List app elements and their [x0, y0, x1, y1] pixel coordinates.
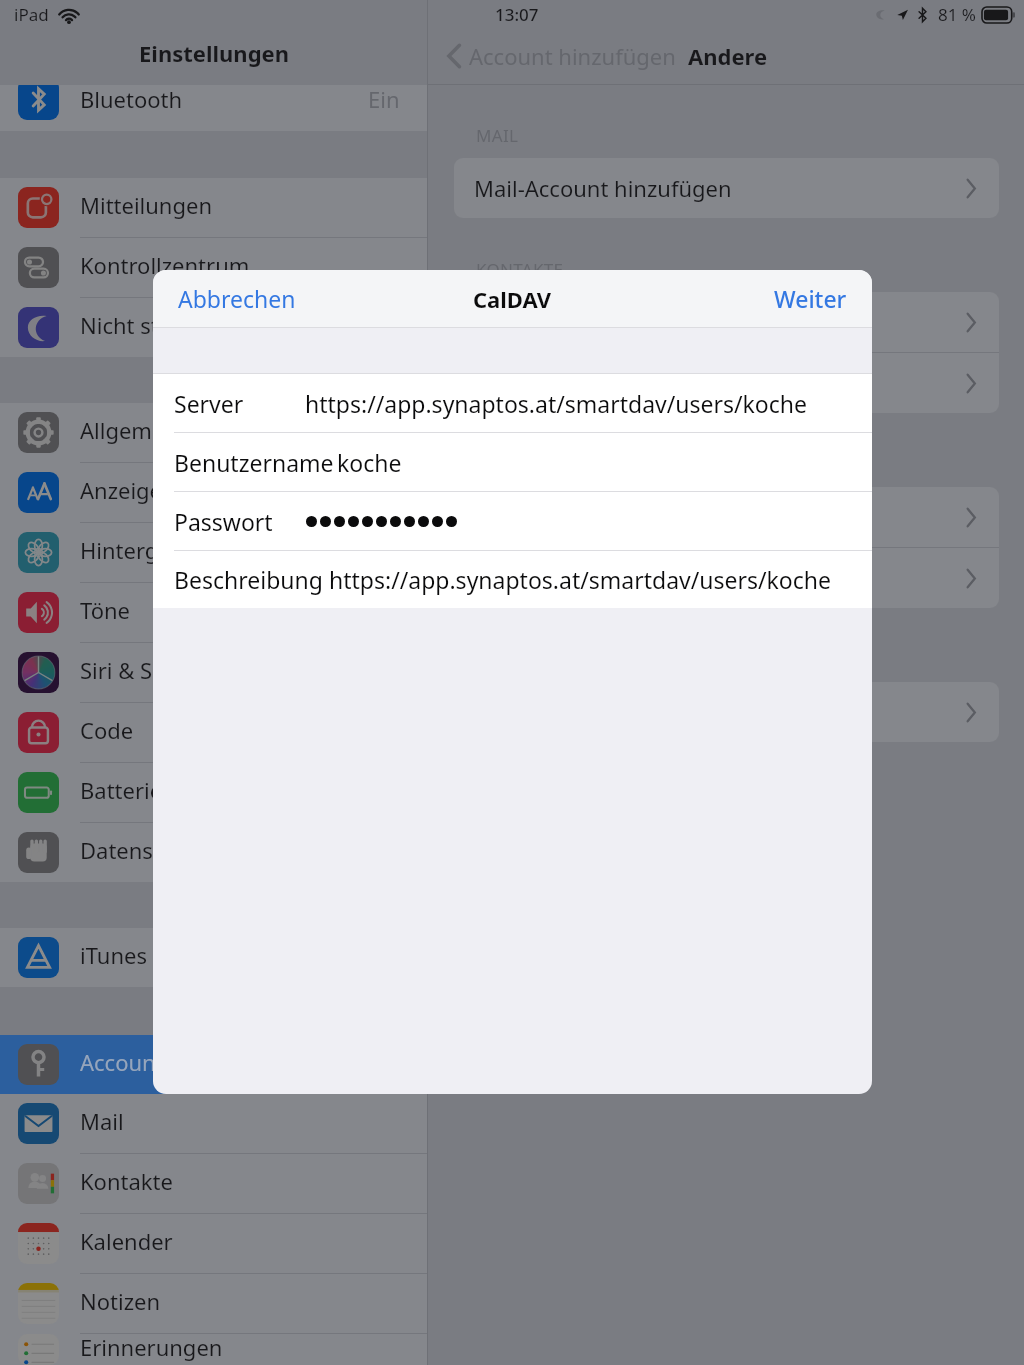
button[interactable]: Anzeige & Helligkeit — [0, 463, 427, 522]
staticText: iPad — [14, 3, 49, 26]
staticText: Erinnerungen — [80, 1332, 223, 1362]
staticText: Benutzername — [174, 447, 334, 478]
staticText: Kontrollzentrum — [80, 250, 250, 280]
button[interactable]: Allgemein — [0, 403, 427, 462]
button[interactable]: Kalenderabo hinzufügen — [454, 548, 999, 608]
button[interactable]: Mitteilungen — [0, 178, 427, 237]
button[interactable]: Batterie — [0, 763, 427, 822]
button[interactable]: Account hinzufügen — [442, 33, 680, 79]
button[interactable]: Bluetooth — [0, 85, 427, 131]
button[interactable]: macOS Server-Account — [454, 682, 999, 742]
button[interactable]: Abbrechen — [153, 271, 321, 326]
staticText: KONTAKTE — [476, 258, 564, 281]
staticText: Beschreibung — [174, 564, 323, 595]
button[interactable]: Hintergrundbild — [0, 523, 427, 582]
staticText: Passwort — [174, 506, 273, 537]
staticText: koche — [337, 447, 402, 478]
staticText: Einstellungen — [139, 38, 289, 68]
button[interactable]: Mail — [0, 1094, 427, 1153]
staticText: Notizen — [80, 1286, 160, 1316]
button[interactable]: Mail-Account hinzufügen — [454, 158, 999, 218]
staticText: Accounts & Passwörter — [80, 1047, 318, 1077]
staticText: Anzeige & Helligkeit — [80, 475, 287, 505]
staticText: Datenschutz — [80, 835, 209, 865]
staticText: iTunes & App Store — [80, 940, 276, 970]
button[interactable]: Töne — [0, 583, 427, 642]
staticText: Abbrechen — [178, 283, 296, 314]
button[interactable]: Accounts & Passwörter — [0, 1035, 427, 1094]
button[interactable]: Notizen — [0, 1274, 427, 1333]
staticText: Kalender — [80, 1226, 173, 1256]
button[interactable]: Erinnerungen — [0, 1334, 427, 1365]
button[interactable]: Kalender — [0, 1214, 427, 1273]
button[interactable]: Server — [153, 374, 872, 432]
staticText: Mail — [80, 1106, 124, 1136]
staticText: CardDAV-Account hinzufügen — [474, 368, 779, 398]
staticText: LDAP-Account hinzufügen — [474, 307, 743, 337]
staticText: Server — [174, 388, 244, 419]
button[interactable]: Beschreibung — [153, 551, 872, 608]
staticText: https://app.synaptos.at/smartdav/users/k… — [305, 388, 807, 419]
staticText: Weiter — [774, 283, 847, 314]
button[interactable]: Code — [0, 703, 427, 762]
staticText: Andere — [688, 41, 768, 71]
staticText: Siri & Suchen — [80, 655, 216, 685]
button[interactable]: CalDAV-Account hinzufügen — [454, 487, 999, 547]
staticText: Kontakte — [80, 1166, 173, 1196]
staticText: 81 % — [938, 3, 976, 26]
staticText: Mitteilungen — [80, 190, 213, 220]
button[interactable]: Siri & Suchen — [0, 643, 427, 702]
staticText: Mail-Account hinzufügen — [474, 173, 732, 203]
staticText: MAIL — [476, 124, 519, 147]
staticText: Code — [80, 715, 134, 745]
staticText: 13:07 — [495, 3, 539, 26]
staticText: Kalenderabo hinzufügen — [474, 563, 729, 593]
button[interactable]: Passwort — [153, 492, 872, 550]
button[interactable]: Benutzername — [153, 433, 872, 491]
button[interactable]: iTunes & App Store — [0, 928, 427, 987]
staticText: Nicht stören — [80, 310, 207, 340]
button[interactable]: Nicht stören — [0, 298, 427, 357]
staticText: Ein — [368, 85, 400, 114]
button[interactable]: Weiter — [749, 271, 872, 326]
staticText: Bluetooth — [80, 85, 183, 114]
button[interactable]: Kontakte — [0, 1154, 427, 1213]
button[interactable]: LDAP-Account hinzufügen — [454, 292, 999, 352]
button[interactable]: Datenschutz — [0, 823, 427, 882]
button[interactable]: CardDAV-Account hinzufügen — [454, 353, 999, 413]
staticText: Account hinzufügen — [469, 41, 676, 71]
staticText: Hintergrundbild — [80, 535, 247, 565]
staticText: Töne — [80, 595, 131, 625]
staticText: https://app.synaptos.at/smartdav/users/k… — [329, 564, 831, 595]
staticText: Allgemein — [80, 415, 184, 445]
staticText: CalDAV — [473, 284, 552, 314]
staticText: Batterie — [80, 775, 163, 805]
button[interactable]: Kontrollzentrum — [0, 238, 427, 297]
